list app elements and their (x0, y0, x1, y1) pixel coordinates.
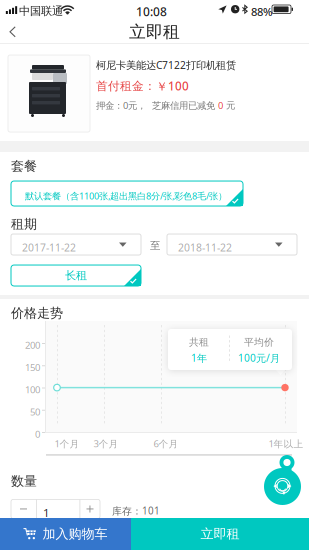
button[interactable]: 长租 (11, 265, 141, 286)
button[interactable]: 增加数量 (79, 499, 100, 518)
button[interactable]: 返回 (0, 21, 34, 43)
staticText: 50 (30, 405, 40, 418)
staticText: 首付租金： (96, 79, 156, 93)
staticText: 加入购物车 (42, 526, 107, 542)
button[interactable]: 立即租 (131, 518, 309, 550)
button[interactable]: 减少数量 (11, 499, 36, 518)
staticText: 1年 (191, 351, 207, 365)
staticText: 200 (25, 339, 40, 352)
staticText: 6个月 (153, 437, 178, 450)
staticText: 价格走势 (11, 305, 63, 321)
staticText: 数量 (11, 473, 37, 489)
staticText: 平均价 (244, 336, 274, 348)
staticText: 立即租 (200, 526, 239, 542)
staticText: 2017-11-22 (22, 240, 76, 254)
button[interactable]: 2018-11-22 (167, 234, 297, 255)
staticText: 0 (35, 427, 40, 440)
staticText: 租期 (11, 216, 37, 232)
staticText: 88% (251, 4, 273, 19)
staticText: ￥100 (156, 78, 189, 94)
staticText: 中国联通 (19, 4, 63, 18)
staticText: 套餐 (11, 158, 37, 174)
staticText: 共租 (189, 336, 209, 348)
button[interactable]: 默认套餐（含1100张,超出黑白8分/张,彩色8毛/张） (11, 181, 243, 206)
staticText: 默认套餐（含1100张,超出黑白8分/张,彩色8毛/张） (25, 190, 227, 202)
staticText: 1年以上 (268, 437, 303, 450)
staticText: 100 (25, 383, 40, 396)
staticText: 150 (25, 361, 40, 374)
staticText: 0 (218, 99, 223, 112)
button[interactable]: 加入购物车 (0, 518, 131, 550)
staticText: 柯尼卡美能达C7122打印机租赁 (96, 58, 236, 72)
staticText: 元 (223, 99, 235, 111)
staticText: 3个月 (93, 437, 118, 450)
staticText: 1 (43, 505, 50, 520)
button[interactable]: 2017-11-22 (11, 234, 141, 255)
staticText: 押金：0元， 芝麻信用已减免 (96, 99, 218, 112)
staticText: 立即租 (129, 21, 180, 43)
staticText: 库存：101 (112, 504, 160, 517)
staticText: 10:08 (136, 3, 167, 20)
staticText: 1个月 (54, 437, 79, 450)
button[interactable]: 在线客服 (264, 468, 301, 505)
staticText: 至 (150, 239, 160, 252)
staticText: 100元/月 (238, 351, 280, 365)
staticText: 长租 (65, 268, 87, 282)
staticText: 2018-11-22 (178, 240, 232, 254)
